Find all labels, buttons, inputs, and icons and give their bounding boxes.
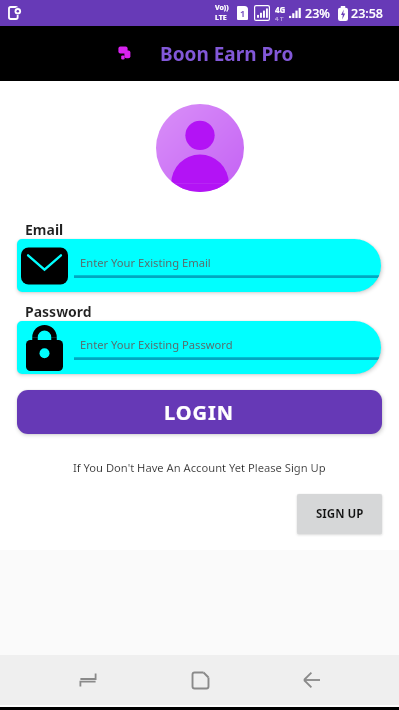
staticText: LTE [215, 13, 227, 23]
staticText: If You Don't Have An Account Yet Please … [73, 460, 326, 475]
button[interactable]: Enter Your Existing Email [17, 239, 381, 292]
button[interactable]: SIGN UP [297, 494, 382, 534]
staticText: Boon Earn Pro [160, 41, 294, 67]
button[interactable]: Enter Your Existing Password [17, 321, 381, 374]
button[interactable]: LOGIN [17, 390, 382, 434]
staticText: LOGIN [164, 399, 235, 426]
staticText: Email [25, 220, 64, 239]
button[interactable]: Recent apps [64, 656, 112, 704]
staticText: Vo)) [215, 3, 229, 13]
staticText: 23% [305, 5, 330, 22]
button[interactable]: Back [287, 656, 335, 704]
staticText: 4G [275, 4, 286, 15]
staticText: SIGN UP [316, 506, 364, 522]
button[interactable]: Home [176, 656, 224, 704]
staticText: 23:58 [351, 5, 384, 22]
staticText: Enter Your Existing Email [80, 255, 211, 270]
staticText: Enter Your Existing Password [80, 337, 233, 352]
staticText: Password [25, 302, 92, 321]
staticText: 1 [240, 7, 246, 19]
staticText: 4 T [275, 15, 284, 23]
